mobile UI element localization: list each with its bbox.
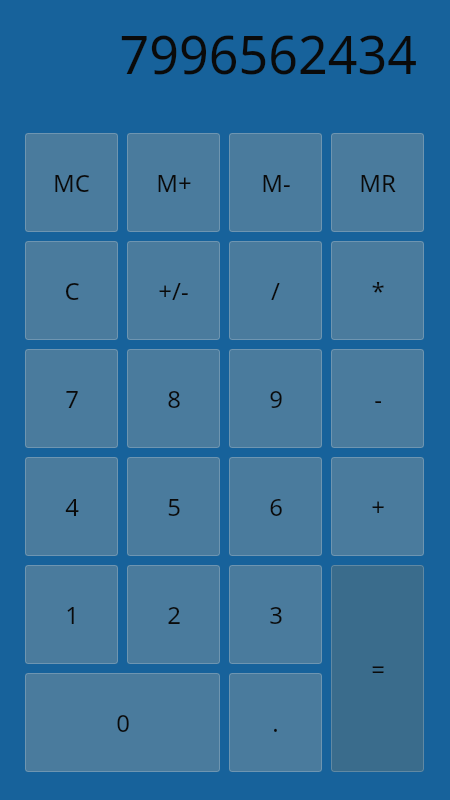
button[interactable]: M- (229, 133, 322, 232)
staticText: M+ (156, 166, 192, 199)
staticText: MC (53, 166, 90, 199)
button[interactable]: +/- (127, 241, 220, 340)
button[interactable]: . (229, 673, 322, 772)
staticText: 2 (167, 598, 181, 631)
button[interactable]: MR (331, 133, 424, 232)
button[interactable]: / (229, 241, 322, 340)
button[interactable]: 8 (127, 349, 220, 448)
staticText: * (371, 274, 385, 307)
button[interactable]: = (331, 565, 424, 772)
staticText: C (64, 274, 80, 307)
button[interactable]: 1 (25, 565, 118, 664)
button[interactable]: - (331, 349, 424, 448)
button[interactable]: MC (25, 133, 118, 232)
staticText: + (371, 490, 385, 523)
button[interactable]: * (331, 241, 424, 340)
button[interactable]: 2 (127, 565, 220, 664)
button[interactable]: C (25, 241, 118, 340)
button[interactable]: 5 (127, 457, 220, 556)
staticText: = (371, 652, 385, 685)
staticText: +/- (158, 274, 189, 307)
staticText: 0 (116, 706, 130, 739)
button[interactable]: 7 (25, 349, 118, 448)
staticText: 5 (167, 490, 181, 523)
staticText: 8 (167, 382, 181, 415)
staticText: M- (261, 166, 291, 199)
staticText: MR (359, 166, 396, 199)
staticText: / (271, 274, 280, 307)
staticText: 1 (65, 598, 79, 631)
button[interactable]: 0 (25, 673, 220, 772)
button[interactable]: 6 (229, 457, 322, 556)
staticText: 6 (269, 490, 283, 523)
button[interactable]: 3 (229, 565, 322, 664)
button[interactable]: 4 (25, 457, 118, 556)
button[interactable]: 9 (229, 349, 322, 448)
staticText: - (374, 382, 382, 415)
staticText: 9 (269, 382, 283, 415)
staticText: . (272, 706, 279, 739)
staticText: 7 (65, 382, 79, 415)
button[interactable]: + (331, 457, 424, 556)
button[interactable]: M+ (127, 133, 220, 232)
staticText: 3 (269, 598, 283, 631)
staticText: 7996562434 (119, 18, 417, 89)
staticText: 4 (65, 490, 79, 523)
